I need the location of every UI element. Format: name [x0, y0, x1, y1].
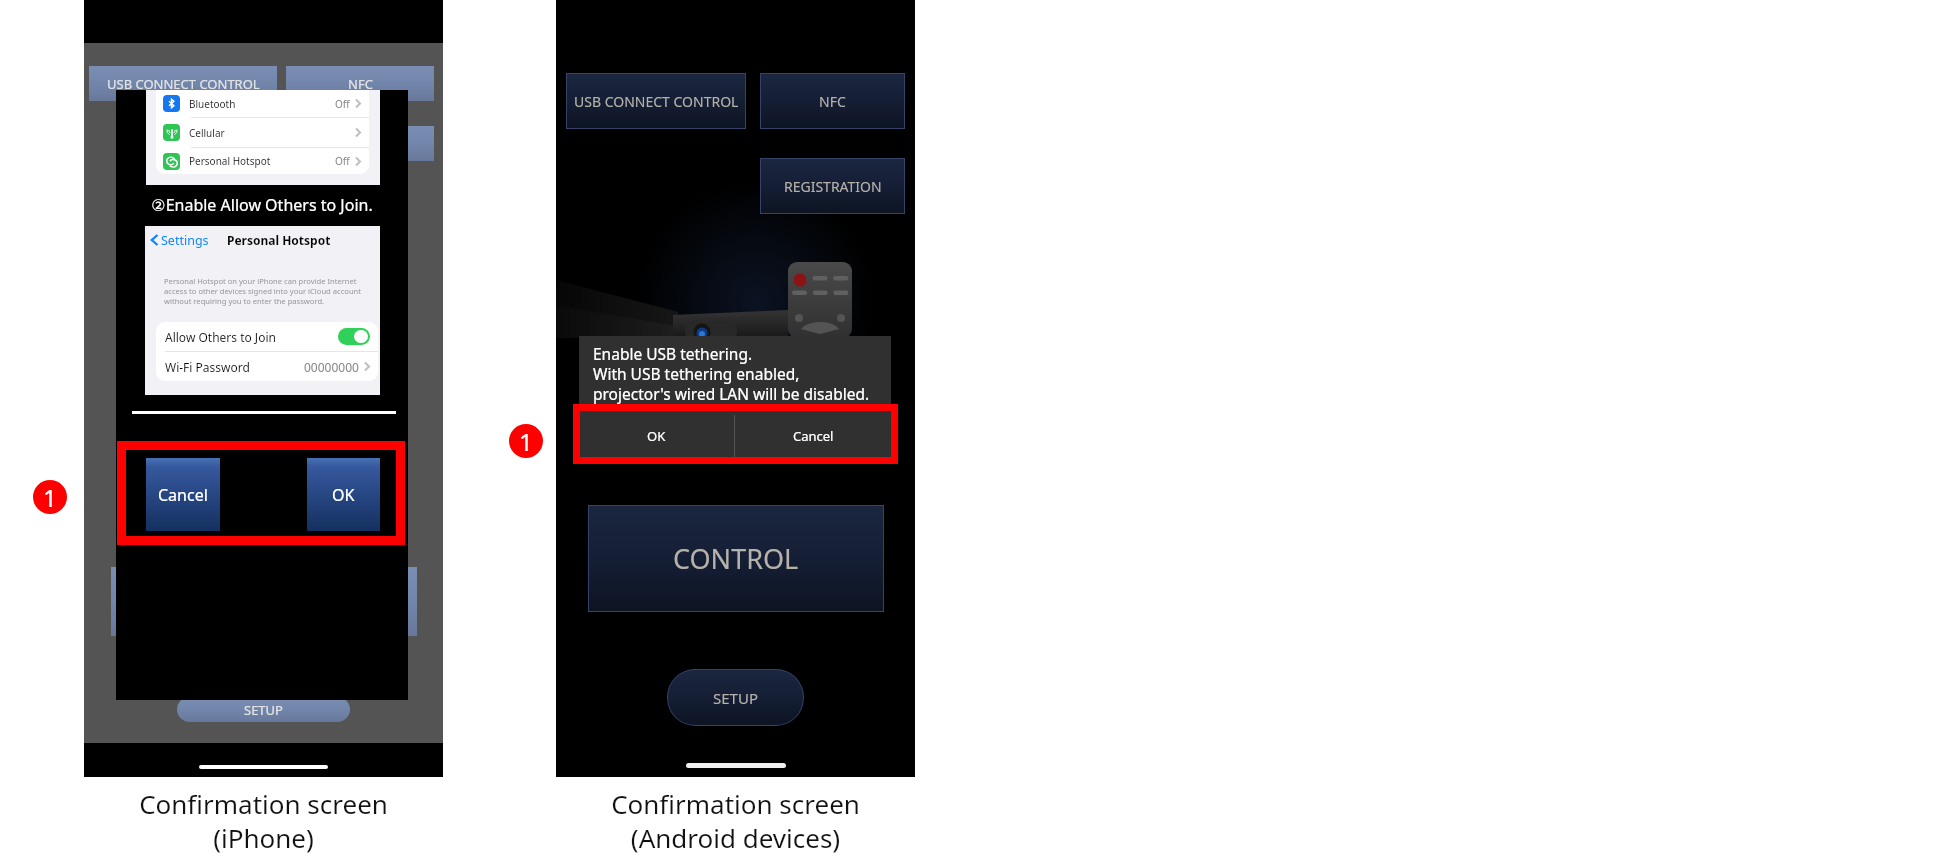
staticText: Bluetooth: [189, 97, 236, 111]
button[interactable]: Cellular: [163, 118, 361, 147]
button[interactable]: [338, 328, 370, 345]
staticText: SETUP: [244, 701, 283, 719]
staticText: Wi-Fi Password: [165, 359, 250, 375]
button[interactable]: NFC: [286, 66, 434, 101]
button[interactable]: Step 1: [33, 480, 67, 514]
button[interactable]: REGISTRATION: [286, 126, 434, 161]
button[interactable]: SETUP: [667, 669, 804, 726]
staticText: Off: [335, 97, 350, 111]
staticText: Personal Hotspot on your iPhone can prov…: [164, 276, 366, 306]
staticText: SETUP: [713, 688, 758, 708]
button[interactable]: Allow Others to Join: [165, 322, 370, 351]
staticText: Settings: [161, 232, 209, 249]
staticText: Cancel: [793, 427, 834, 445]
staticText: 1: [43, 481, 57, 514]
staticText: OK: [647, 427, 666, 445]
staticText: REGISTRATION: [315, 135, 406, 153]
staticText: 00000000: [304, 359, 359, 375]
button[interactable]: Step 1: [509, 424, 543, 458]
staticText: NFC: [348, 75, 373, 93]
button[interactable]: CONTROL: [111, 567, 417, 636]
button[interactable]: NFC: [760, 73, 905, 129]
staticText: OK: [332, 484, 355, 506]
button[interactable]: Wi-Fi Password: [165, 352, 370, 381]
staticText: Cancel: [158, 484, 208, 506]
button[interactable]: REGISTRATION: [760, 158, 905, 214]
button[interactable]: Bluetooth: [163, 90, 361, 117]
button[interactable]: Cancel: [146, 458, 220, 531]
button[interactable]: OK: [579, 415, 734, 457]
staticText: Enable USB tethering. With USB tethering…: [593, 343, 870, 404]
button[interactable]: USB CONNECT CONTROL: [89, 66, 277, 101]
staticText: USB CONNECT CONTROL: [107, 75, 260, 93]
button[interactable]: SETUP: [177, 697, 350, 722]
button[interactable]: OK: [307, 458, 380, 531]
button[interactable]: USB CONNECT CONTROL: [566, 73, 746, 129]
staticText: Personal Hotspot: [189, 154, 271, 168]
button[interactable]: CONTROL: [588, 505, 884, 612]
staticText: Personal Hotspot: [227, 232, 331, 248]
button[interactable]: Personal Hotspot: [163, 148, 361, 174]
staticText: Cellular: [189, 126, 225, 140]
staticText: 1: [519, 425, 533, 458]
staticText: Confirmation screen (Android devices): [556, 786, 915, 855]
staticText: NFC: [819, 92, 846, 111]
staticText: Off: [335, 154, 350, 168]
staticText: Allow Others to Join: [165, 329, 276, 345]
staticText: REGISTRATION: [784, 177, 882, 196]
button[interactable]: Cancel: [735, 415, 891, 457]
staticText: ②Enable Allow Others to Join.: [116, 194, 408, 216]
staticText: USB CONNECT CONTROL: [574, 92, 739, 111]
staticText: CONTROL: [673, 540, 799, 577]
staticText: Confirmation screen (iPhone): [84, 786, 443, 855]
